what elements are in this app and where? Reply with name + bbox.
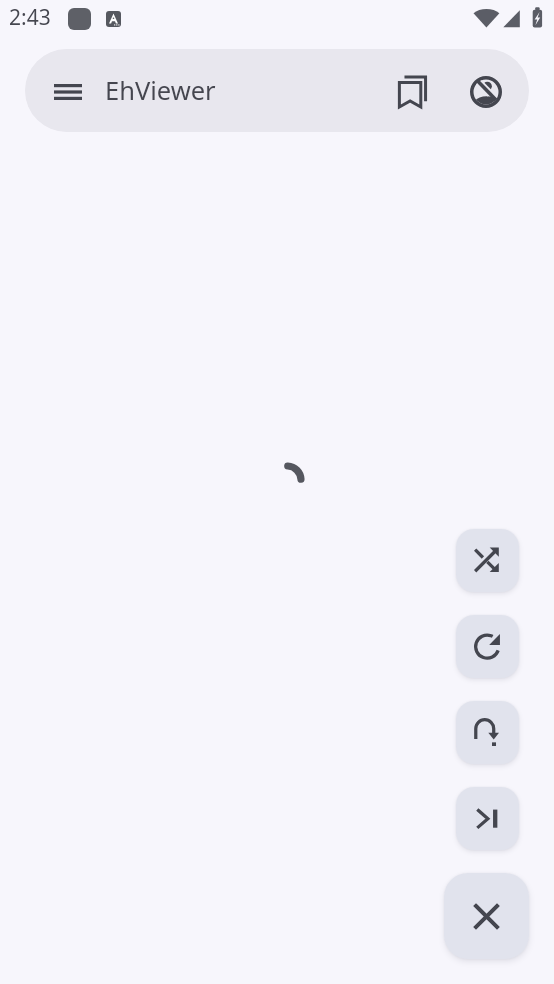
staticText: EhViewer bbox=[105, 73, 216, 108]
button[interactable]: Go to page bbox=[456, 701, 519, 764]
button[interactable]: Refresh bbox=[456, 615, 519, 678]
button[interactable]: Close bbox=[444, 873, 529, 959]
button[interactable]: Last page bbox=[456, 787, 519, 850]
button[interactable]: Bookmarks bbox=[390, 67, 438, 115]
button[interactable]: Toggle thumbnails bbox=[462, 68, 510, 116]
button[interactable]: Open navigation menu bbox=[25, 49, 529, 132]
button[interactable]: Open navigation menu bbox=[44, 68, 92, 116]
staticText: 2:43 bbox=[9, 3, 51, 32]
button[interactable]: Shuffle bbox=[456, 529, 519, 592]
